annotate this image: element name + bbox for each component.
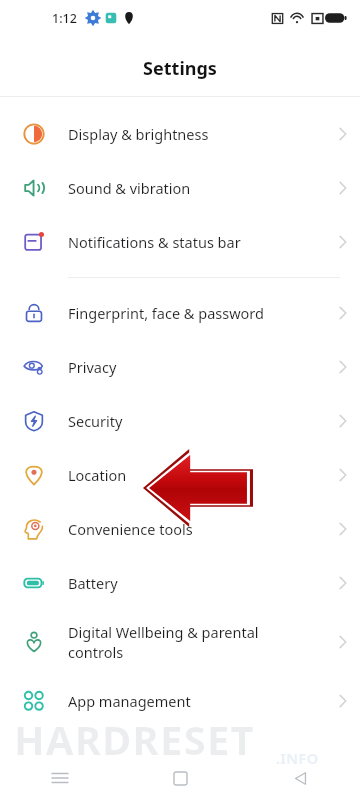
staticText: Digital Wellbeing & parental controls [68, 622, 314, 662]
button[interactable]: Location [0, 448, 360, 502]
button[interactable]: Privacy [0, 340, 360, 394]
button[interactable]: Display & brightness [0, 107, 360, 161]
button[interactable]: Home [120, 756, 240, 800]
button[interactable]: Recent apps [0, 756, 120, 800]
button[interactable]: App management [0, 674, 360, 728]
staticText: Privacy [68, 357, 314, 377]
staticText: Settings [143, 56, 217, 81]
staticText: Fingerprint, face & password [68, 303, 314, 323]
staticText: Location [68, 465, 314, 485]
staticText: 1:12 [52, 10, 77, 27]
button[interactable]: Sound & vibration [0, 161, 360, 215]
button[interactable]: Digital Wellbeing & parental controls [0, 610, 360, 674]
staticText: Sound & vibration [68, 178, 314, 198]
button[interactable]: Battery [0, 556, 360, 610]
button[interactable]: Fingerprint, face & password [0, 286, 360, 340]
staticText: Notifications & status bar [68, 232, 314, 252]
button[interactable]: Security [0, 394, 360, 448]
staticText: Security [68, 411, 314, 431]
staticText: Battery [68, 573, 314, 593]
button[interactable]: Convenience tools [0, 502, 360, 556]
staticText: Display & brightness [68, 124, 314, 144]
button[interactable]: Notifications & status bar [0, 215, 360, 269]
staticText: App management [68, 691, 314, 711]
staticText: HARDRESET [14, 712, 255, 766]
staticText: Convenience tools [68, 519, 314, 539]
button[interactable]: Back [240, 756, 360, 800]
staticText: .INFO [276, 748, 319, 768]
